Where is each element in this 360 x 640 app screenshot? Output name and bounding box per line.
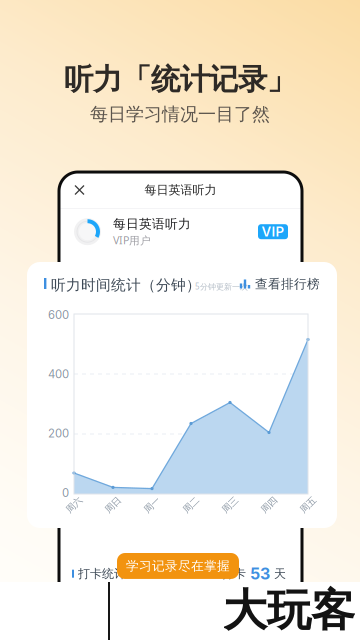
staticText: VIP <box>261 224 284 240</box>
button[interactable]: 查看排行榜 <box>240 276 330 292</box>
staticText: 周日 <box>104 499 122 511</box>
staticText: 200 <box>48 427 69 440</box>
staticText: 天 <box>274 566 286 581</box>
staticText: 周三 <box>221 499 239 511</box>
button[interactable]: VIP <box>258 224 288 239</box>
staticText: 周六 <box>65 499 83 511</box>
staticText: 打卡 <box>222 566 246 581</box>
staticText: 每日英语听力 <box>144 182 216 197</box>
staticText: 周五 <box>299 499 317 511</box>
staticText: 周一 <box>143 499 161 511</box>
staticText: 每日学习情况一目了然 <box>90 103 270 126</box>
staticText: 600 <box>48 308 69 322</box>
staticText: 5分钟更新一次 <box>195 281 248 292</box>
staticText: 打卡统计 <box>78 566 126 581</box>
staticText: 查看排行榜 <box>255 276 320 292</box>
button[interactable]: Close <box>67 177 92 202</box>
staticText: 0 <box>62 486 69 500</box>
staticText: 大玩客 <box>223 583 355 638</box>
staticText: 周二 <box>182 499 200 511</box>
staticText: 周四 <box>260 499 278 511</box>
staticText: 400 <box>48 367 69 381</box>
staticText: VIP用户 <box>113 233 151 247</box>
staticText: 听力时间统计（分钟） <box>51 276 201 294</box>
staticText: 每日英语听力 <box>113 216 191 232</box>
staticText: 学习记录尽在掌握 <box>126 558 230 574</box>
staticText: 53 <box>246 564 274 583</box>
staticText: 听力「统计记录」 <box>64 61 296 98</box>
